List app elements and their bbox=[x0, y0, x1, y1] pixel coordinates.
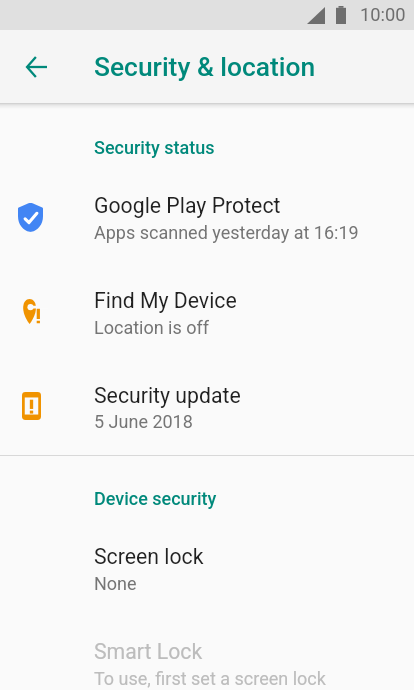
staticText: Location is off bbox=[94, 317, 210, 338]
staticText: To use, first set a screen lock bbox=[94, 668, 326, 689]
staticText: Security status bbox=[94, 137, 215, 158]
staticText: 5 June 2018 bbox=[94, 411, 193, 432]
staticText: Google Play Protect bbox=[94, 193, 281, 218]
button[interactable]: Google Play Protect bbox=[0, 170, 414, 265]
staticText: 10:00 bbox=[360, 4, 406, 25]
staticText: None bbox=[94, 573, 137, 594]
button[interactable]: Navigate up bbox=[14, 44, 59, 89]
button[interactable]: Find My Device bbox=[0, 265, 414, 360]
button[interactable]: Screen lock bbox=[0, 521, 414, 616]
staticText: Screen lock bbox=[94, 544, 204, 569]
button[interactable]: Smart Lock bbox=[0, 616, 414, 690]
button[interactable]: Security update bbox=[0, 360, 414, 455]
staticText: Smart Lock bbox=[94, 639, 203, 664]
staticText: Device security bbox=[94, 488, 217, 509]
staticText: Find My Device bbox=[94, 288, 237, 313]
staticText: Security & location bbox=[94, 52, 316, 83]
staticText: Apps scanned yesterday at 16:19 bbox=[94, 222, 359, 243]
staticText: Security update bbox=[94, 383, 241, 408]
